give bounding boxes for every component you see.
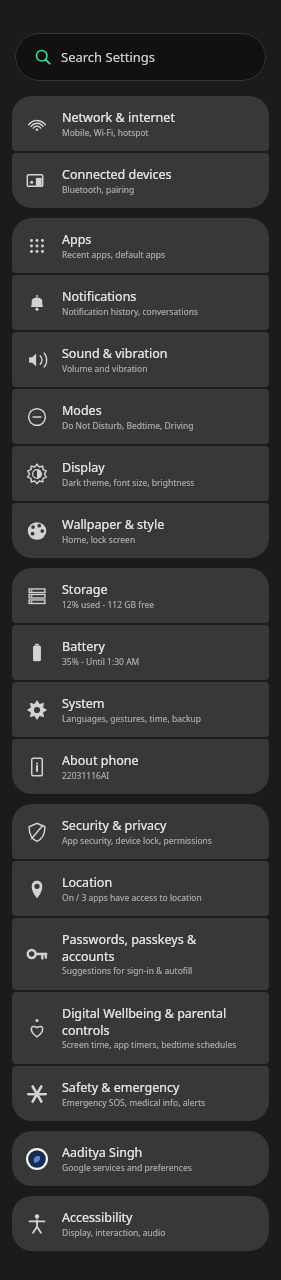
button[interactable]: Passwords, passkeys & accounts <box>12 918 269 990</box>
button[interactable]: Wallpaper & style <box>12 503 269 558</box>
staticText: Notification history, conversations <box>62 306 199 318</box>
staticText: Digital Wellbeing & parental controls <box>62 1005 227 1038</box>
staticText: Mobile, Wi-Fi, hotspot <box>62 127 149 139</box>
staticText: Recent apps, default apps <box>62 249 166 261</box>
staticText: Dark theme, font size, brightness <box>62 477 195 489</box>
staticText: Emergency SOS, medical info, alerts <box>62 1097 206 1109</box>
staticText: 22031116AI <box>62 770 110 782</box>
staticText: 12% used - 112 GB free <box>62 599 155 611</box>
staticText: Apps <box>62 231 92 248</box>
staticText: Volume and vibration <box>62 363 148 375</box>
staticText: Do Not Disturb, Bedtime, Driving <box>62 420 194 432</box>
button[interactable]: Battery <box>12 625 269 680</box>
staticText: Notifications <box>62 288 137 305</box>
button[interactable]: Connected devices <box>12 153 269 208</box>
staticText: 35% - Until 1:30 AM <box>62 656 140 668</box>
staticText: Display, interaction, audio <box>62 1227 166 1239</box>
button[interactable]: Apps <box>12 218 269 273</box>
staticText: Storage <box>62 581 108 598</box>
button[interactable]: Safety & emergency <box>12 1066 269 1121</box>
staticText: Search Settings <box>61 48 155 66</box>
button[interactable]: About phone <box>12 739 269 794</box>
staticText: Battery <box>62 638 105 655</box>
staticText: Home, lock screen <box>62 534 136 546</box>
staticText: Location <box>62 874 113 891</box>
staticText: Suggestions for sign-in & autofill <box>62 965 193 977</box>
staticText: Aaditya Singh <box>62 1144 143 1161</box>
staticText: On / 3 apps have access to location <box>62 892 202 904</box>
staticText: Security & privacy <box>62 817 167 834</box>
button[interactable]: Sound & vibration <box>12 332 269 387</box>
staticText: Network & internet <box>62 109 175 126</box>
button[interactable]: Modes <box>12 389 269 444</box>
staticText: Google services and preferences <box>62 1162 192 1174</box>
staticText: Accessibility <box>62 1209 133 1226</box>
button[interactable]: Search Settings <box>15 33 266 81</box>
staticText: Screen time, app timers, bedtime schedul… <box>62 1039 237 1051</box>
staticText: Bluetooth, pairing <box>62 184 135 196</box>
staticText: Modes <box>62 402 102 419</box>
button[interactable]: Display <box>12 446 269 501</box>
staticText: Languages, gestures, time, backup <box>62 713 202 725</box>
staticText: Safety & emergency <box>62 1079 180 1096</box>
staticText: System <box>62 695 105 712</box>
button[interactable]: Network & internet <box>12 96 269 151</box>
staticText: About phone <box>62 752 139 769</box>
button[interactable]: Location <box>12 861 269 916</box>
button[interactable]: System <box>12 682 269 737</box>
button[interactable]: Aaditya Singh <box>12 1131 269 1186</box>
button[interactable]: Storage <box>12 568 269 623</box>
staticText: Wallpaper & style <box>62 516 165 533</box>
button[interactable]: Accessibility <box>12 1196 269 1251</box>
staticText: Display <box>62 459 105 476</box>
staticText: Connected devices <box>62 166 172 183</box>
button[interactable]: Notifications <box>12 275 269 330</box>
staticText: Passwords, passkeys & accounts <box>62 931 197 964</box>
button[interactable]: Security & privacy <box>12 804 269 859</box>
button[interactable]: Digital Wellbeing & parental controls <box>12 992 269 1064</box>
staticText: App security, device lock, permissions <box>62 835 212 847</box>
staticText: Sound & vibration <box>62 345 168 362</box>
